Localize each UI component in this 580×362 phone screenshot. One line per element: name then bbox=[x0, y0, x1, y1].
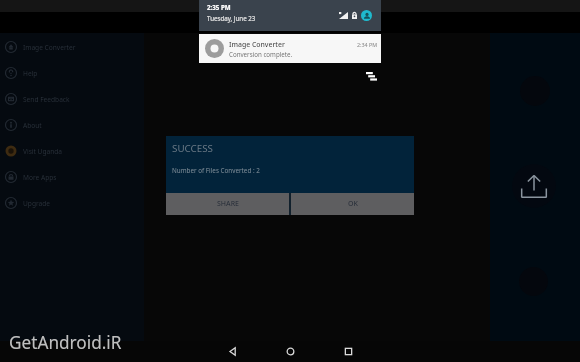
staticText: GetAndroid.iR bbox=[9, 331, 122, 354]
button[interactable]: Image Converter bbox=[0, 34, 144, 60]
staticText: Image Converter bbox=[229, 40, 285, 49]
button[interactable]: Upgrade bbox=[0, 190, 144, 216]
staticText: OK bbox=[348, 199, 358, 209]
button[interactable]: Help bbox=[0, 60, 144, 86]
staticText: Send Feedback bbox=[23, 95, 70, 104]
button[interactable]: Image Converter bbox=[199, 34, 381, 63]
button[interactable]: Visit Uganda bbox=[0, 138, 144, 164]
button[interactable]: Send Feedback bbox=[0, 86, 144, 112]
staticText: About bbox=[23, 121, 42, 130]
staticText: SHARE bbox=[217, 199, 239, 209]
button[interactable]: OK bbox=[291, 193, 414, 215]
button[interactable]: SHARE bbox=[166, 193, 289, 215]
staticText: Visit Uganda bbox=[23, 147, 63, 156]
button[interactable]: Back bbox=[203, 341, 261, 362]
staticText: Number of Files Converted : 2 bbox=[172, 166, 260, 175]
button[interactable]: Upload bbox=[512, 164, 556, 208]
staticText: Upgrade bbox=[23, 199, 50, 208]
staticText: 2:34 PM bbox=[357, 41, 378, 48]
button[interactable]: Home bbox=[261, 341, 319, 362]
staticText: Help bbox=[23, 69, 38, 78]
staticText: Tuesday, June 23 bbox=[207, 14, 256, 22]
staticText: SUCCESS bbox=[172, 142, 213, 155]
button[interactable]: Recents bbox=[319, 341, 377, 362]
button[interactable]: About bbox=[0, 112, 144, 138]
staticText: Conversion complete. bbox=[229, 50, 293, 58]
staticText: More Apps bbox=[23, 173, 57, 182]
button[interactable]: Account bbox=[361, 10, 372, 21]
staticText: 2:35 PM bbox=[207, 3, 231, 11]
button[interactable]: More Apps bbox=[0, 164, 144, 190]
staticText: Image Converter bbox=[23, 43, 76, 52]
